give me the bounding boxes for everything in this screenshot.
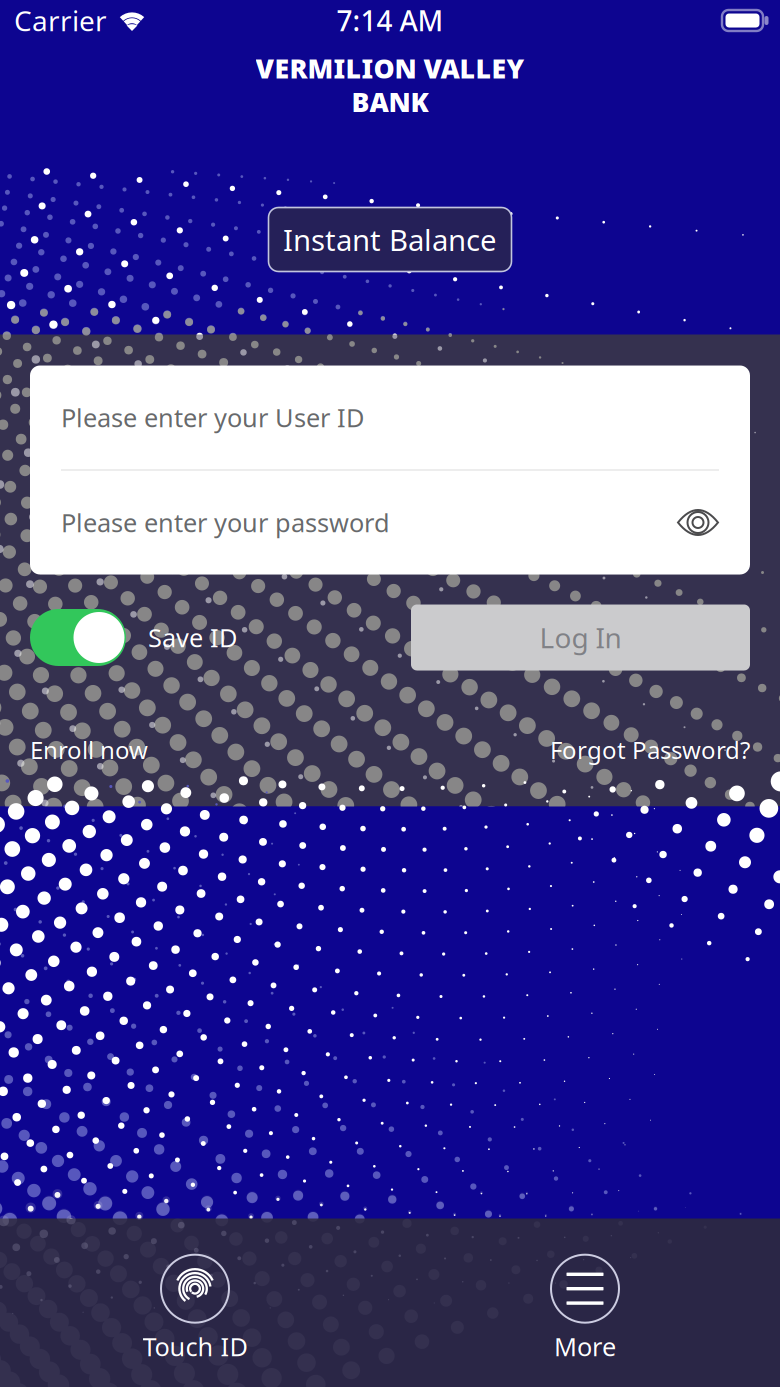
button[interactable]: Enroll now <box>30 734 148 765</box>
staticText: BANK <box>351 84 428 119</box>
button[interactable]: Forgot Password? <box>550 734 750 765</box>
staticText: 7:14 AM <box>336 2 443 39</box>
button[interactable]: Save ID <box>30 609 237 666</box>
button[interactable]: Log In <box>411 604 750 670</box>
button[interactable]: Instant Balance <box>268 207 511 271</box>
staticText: Save ID <box>148 621 237 654</box>
button[interactable]: Please enter your password <box>30 470 750 574</box>
staticText: More <box>554 1330 616 1363</box>
button[interactable]: More <box>390 1255 780 1363</box>
staticText: VERMILION VALLEY <box>255 50 524 86</box>
staticText: Touch ID <box>142 1330 247 1363</box>
staticText: Log In <box>539 619 621 656</box>
button[interactable]: Touch ID <box>0 1255 390 1363</box>
staticText: Please enter your password <box>61 506 390 539</box>
staticText: Please enter your User ID <box>61 401 364 434</box>
staticText: Instant Balance <box>283 220 497 259</box>
staticText: Carrier <box>14 2 107 39</box>
staticText: Enroll now <box>30 734 148 765</box>
staticText: Forgot Password? <box>550 734 750 765</box>
button[interactable]: Please enter your User ID <box>30 365 750 469</box>
